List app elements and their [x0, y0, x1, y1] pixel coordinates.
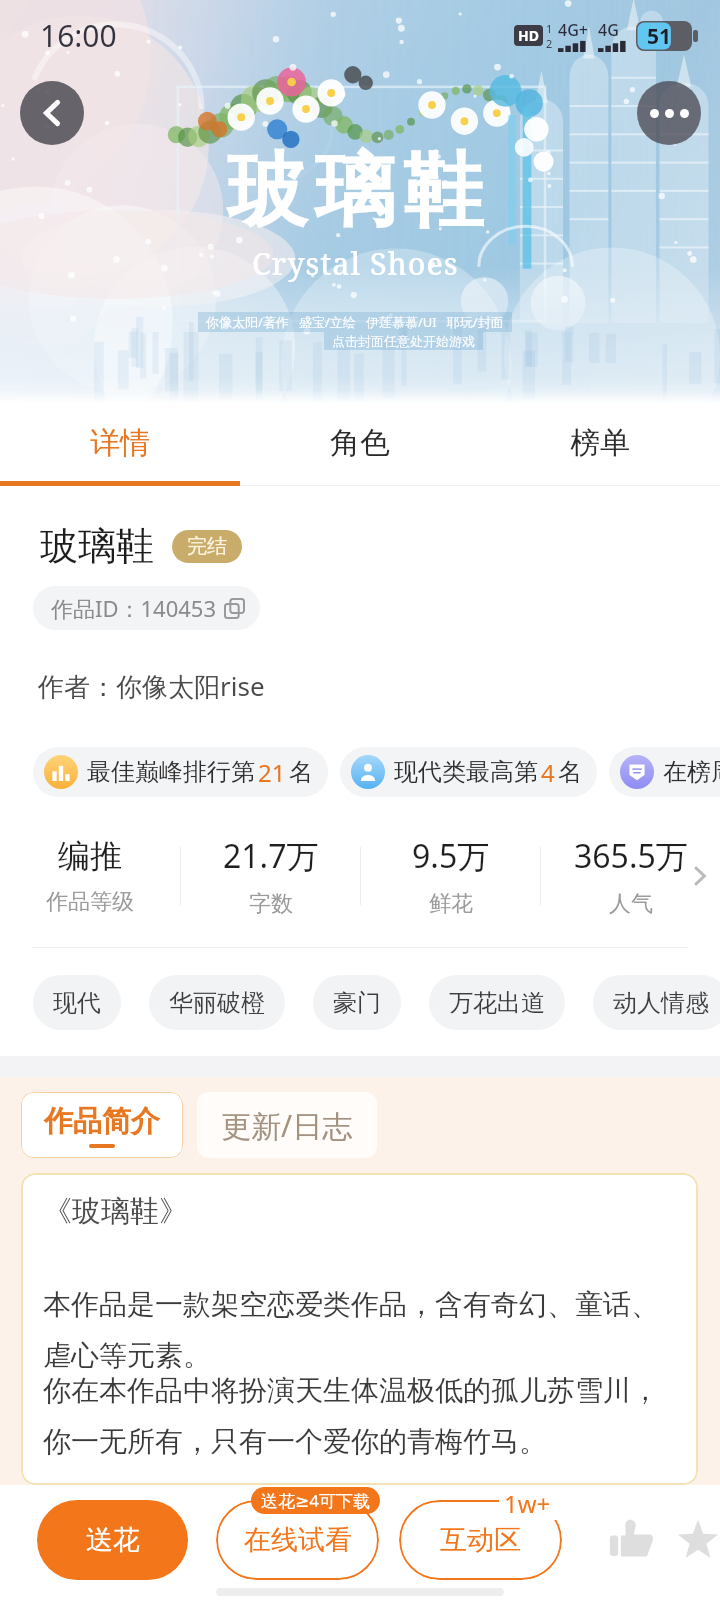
button[interactable]: 在线试看 [216, 1500, 379, 1580]
button[interactable]: 最佳巅峰排行第 [33, 747, 328, 797]
button[interactable]: 作品简介 [21, 1092, 183, 1158]
staticText: 51 [647, 22, 672, 51]
button[interactable]: 动人情感 [593, 975, 720, 1030]
button[interactable]: Favourite [676, 1500, 720, 1580]
button[interactable]: 21.7万 [181, 834, 360, 918]
staticText: 《玻璃鞋》 [43, 1193, 188, 1230]
button[interactable]: 现代类最高第 [340, 747, 597, 797]
button[interactable]: 现代 [33, 975, 121, 1030]
staticText: 角色 [330, 424, 390, 462]
staticText: 动人情感 [613, 988, 709, 1018]
button[interactable]: 华丽破橙 [149, 975, 285, 1030]
button[interactable]: 详情 [0, 404, 240, 481]
staticText: 作品等级 [46, 888, 134, 916]
staticText: 名 [558, 757, 582, 787]
staticText: 完结 [187, 534, 227, 559]
staticText: 你在本作品中将扮演天生体温极低的孤儿苏雪川，你一无所有，只有一个爱你的青梅竹马。 [43, 1373, 684, 1459]
staticText: 本作品是一款架空恋爱类作品，含有奇幻、童话、虐心等元素。 [43, 1287, 684, 1373]
staticText: 更新/日志 [221, 1105, 353, 1146]
staticText: 送花≥4可下载 [261, 1489, 370, 1512]
staticText: 4G+ [558, 19, 588, 41]
staticText: 作品ID：140453 [51, 593, 217, 623]
staticText: 编推 [58, 836, 122, 876]
staticText: Crystal Shoes [252, 243, 459, 284]
button[interactable]: More stats [680, 847, 720, 905]
button[interactable]: 作品ID：140453 [33, 586, 260, 630]
staticText: 玻璃鞋 [223, 141, 487, 242]
staticText: 365.5万 [574, 834, 688, 878]
staticText: 豪门 [333, 988, 381, 1018]
button[interactable]: Back [20, 81, 84, 145]
button[interactable]: More options [637, 81, 701, 145]
staticText: 4 [541, 756, 555, 789]
button[interactable]: 万花出道 [429, 975, 565, 1030]
staticText: 送花 [86, 1523, 140, 1557]
button[interactable]: 365.5万 [541, 834, 720, 918]
staticText: 现代类最高第 [394, 757, 538, 787]
staticText: 21 [258, 756, 286, 789]
staticText: 在线试看 [244, 1523, 352, 1557]
staticText: HD [518, 26, 539, 45]
button[interactable]: 角色 [240, 404, 480, 481]
staticText: 人气 [609, 890, 653, 918]
staticText: 4G [598, 19, 619, 41]
button[interactable]: 榜单 [480, 404, 720, 481]
staticText: 16:00 [40, 15, 117, 56]
staticText: 字数 [249, 890, 293, 918]
staticText: 最佳巅峰排行第 [87, 757, 255, 787]
staticText: 万花出道 [449, 988, 545, 1018]
button[interactable]: 编推 [0, 836, 180, 916]
staticText: 作者：你像太阳rise [38, 668, 265, 704]
staticText: 详情 [90, 424, 150, 462]
button[interactable]: 9.5万 [361, 834, 540, 918]
button[interactable]: 送花 [37, 1500, 188, 1580]
button[interactable]: 在榜周榜第 [609, 747, 720, 797]
staticText: 华丽破橙 [169, 988, 265, 1018]
staticText: 1 [546, 21, 553, 36]
staticText: 1w+ [504, 1487, 551, 1520]
button[interactable]: 互动区 [399, 1500, 562, 1580]
staticText: 21.7万 [223, 834, 319, 878]
staticText: 榜单 [570, 424, 630, 462]
staticText: 鲜花 [429, 890, 473, 918]
button[interactable]: Like [586, 1500, 676, 1580]
button[interactable]: 豪门 [313, 975, 401, 1030]
staticText: 名 [289, 757, 313, 787]
staticText: 2 [546, 36, 553, 51]
staticText: 9.5万 [412, 834, 490, 878]
staticText: 你像太阳/著作 盛宝/立绘 伊莲慕慕/UI 耶玩/封面 [206, 313, 504, 331]
button[interactable]: 更新/日志 [197, 1092, 377, 1158]
staticText: 玻璃鞋 [40, 522, 154, 570]
staticText: 点击封面任意处开始游戏 [332, 333, 475, 349]
staticText: 互动区 [440, 1523, 521, 1557]
staticText: 在榜周榜第 [663, 757, 720, 787]
staticText: 现代 [53, 988, 101, 1018]
staticText: 作品简介 [44, 1103, 160, 1140]
